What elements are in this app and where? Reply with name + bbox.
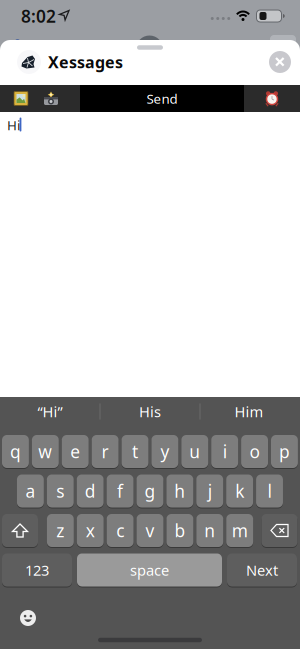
button[interactable]: z <box>47 513 74 547</box>
staticText: Next <box>246 560 278 580</box>
button[interactable]: Send <box>80 85 244 112</box>
staticText: a <box>25 479 35 502</box>
button[interactable]: Timer <box>260 86 284 110</box>
staticText: b <box>174 519 185 542</box>
button[interactable]: Shift <box>2 513 38 547</box>
staticText: q <box>10 440 21 463</box>
staticText: Xessages <box>48 51 123 73</box>
button[interactable]: h <box>166 474 193 508</box>
button[interactable]: i <box>211 434 238 468</box>
staticText: u <box>189 440 200 463</box>
button[interactable]: f <box>107 474 133 508</box>
staticText: g <box>144 479 155 502</box>
button[interactable]: m <box>226 513 253 547</box>
button[interactable]: s <box>47 474 74 508</box>
button[interactable]: e <box>62 434 89 468</box>
staticText: 8:02 <box>21 4 56 27</box>
staticText: e <box>70 440 80 463</box>
button[interactable]: r <box>92 434 119 468</box>
button[interactable]: “Hi” <box>0 396 99 426</box>
staticText: x <box>86 519 95 542</box>
button[interactable]: l <box>256 474 283 508</box>
staticText: Him <box>234 402 263 421</box>
staticText: l <box>267 479 271 502</box>
staticText: “Hi” <box>37 402 62 421</box>
staticText: h <box>174 479 185 502</box>
button[interactable]: v <box>137 513 163 547</box>
button[interactable]: space <box>77 553 222 587</box>
button[interactable]: p <box>271 434 298 468</box>
staticText: v <box>145 519 154 542</box>
button[interactable]: t <box>122 434 148 468</box>
staticText: space <box>130 560 169 580</box>
button[interactable]: n <box>196 513 223 547</box>
button[interactable]: Emoji <box>17 607 39 629</box>
button[interactable]: j <box>196 474 223 508</box>
button[interactable]: 123 <box>2 553 72 587</box>
button[interactable]: Camera <box>39 86 63 110</box>
staticText: y <box>160 440 169 463</box>
staticText: o <box>250 440 260 463</box>
button[interactable]: b <box>166 513 193 547</box>
button[interactable]: His <box>100 396 199 426</box>
button[interactable]: g <box>136 474 163 508</box>
button[interactable]: Next <box>227 553 297 587</box>
staticText: j <box>208 479 212 502</box>
staticText: Send <box>146 90 177 107</box>
button[interactable]: k <box>226 474 253 508</box>
staticText: His <box>139 402 161 421</box>
staticText: p <box>279 440 290 463</box>
staticText: r <box>102 440 109 463</box>
button[interactable]: Delete <box>261 513 297 547</box>
button[interactable]: c <box>107 513 134 547</box>
staticText: z <box>56 519 64 542</box>
button[interactable]: a <box>17 474 44 508</box>
staticText: m <box>232 519 248 542</box>
button[interactable]: q <box>2 434 29 468</box>
button[interactable]: d <box>77 474 104 508</box>
button[interactable]: u <box>181 434 208 468</box>
staticText: n <box>204 519 215 542</box>
button[interactable]: w <box>32 434 59 468</box>
button[interactable]: x <box>77 513 104 547</box>
staticText: Hi <box>7 116 20 134</box>
staticText: 123 <box>25 560 49 580</box>
staticText: k <box>235 479 244 502</box>
button[interactable]: y <box>151 434 178 468</box>
staticText: c <box>116 519 124 542</box>
button[interactable]: Him <box>199 396 298 426</box>
staticText: f <box>117 479 123 502</box>
button[interactable]: Photos <box>9 86 33 110</box>
staticText: t <box>132 440 138 463</box>
button[interactable]: o <box>241 434 268 468</box>
staticText: i <box>223 440 227 463</box>
button[interactable]: Close <box>269 51 291 73</box>
staticText: d <box>85 479 96 502</box>
staticText: w <box>38 440 52 463</box>
staticText: s <box>56 479 64 502</box>
